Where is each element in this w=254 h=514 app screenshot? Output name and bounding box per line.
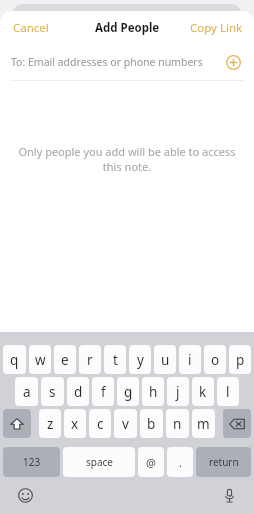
button[interactable]: i — [179, 345, 201, 374]
staticText: Add People — [95, 20, 160, 36]
staticText: z — [47, 415, 54, 433]
button[interactable]: c — [89, 409, 111, 438]
button[interactable]: k — [192, 377, 214, 406]
button[interactable]: r — [79, 345, 101, 374]
staticText: g — [124, 383, 133, 401]
staticText: o — [211, 351, 220, 369]
staticText: Cancel — [13, 20, 49, 36]
button[interactable]: f — [92, 377, 114, 406]
staticText: q — [10, 351, 19, 369]
button[interactable]: b — [140, 409, 163, 438]
staticText: u — [161, 351, 170, 369]
button[interactable]: @ — [138, 447, 164, 477]
button[interactable]: o — [204, 345, 226, 374]
button[interactable]: 123 — [3, 447, 60, 477]
staticText: j — [176, 383, 180, 401]
button[interactable]: return — [196, 447, 251, 477]
staticText: c — [97, 415, 104, 433]
staticText: x — [71, 415, 79, 433]
staticText: 123 — [23, 455, 41, 469]
staticText: p — [236, 351, 245, 369]
staticText: a — [23, 383, 31, 401]
staticText: k — [199, 383, 207, 401]
staticText: f — [101, 383, 106, 401]
button[interactable]: x — [64, 409, 86, 438]
button[interactable]: Dictation — [218, 484, 240, 506]
staticText: m — [197, 415, 210, 433]
button[interactable]: t — [104, 345, 126, 374]
button[interactable]: w — [29, 345, 51, 374]
staticText: t — [113, 351, 118, 369]
staticText: @ — [146, 455, 156, 470]
button[interactable]: Emoji — [14, 484, 36, 506]
button[interactable]: Shift — [3, 409, 31, 438]
button[interactable]: n — [166, 409, 189, 438]
button[interactable]: Add contact — [221, 50, 245, 74]
button[interactable]: j — [167, 377, 189, 406]
staticText: l — [226, 383, 230, 401]
staticText: space — [86, 455, 113, 469]
button[interactable]: h — [142, 377, 164, 406]
button[interactable]: v — [114, 409, 137, 438]
staticText: Only people you add will be able to acce… — [14, 144, 240, 174]
staticText: s — [49, 383, 56, 401]
staticText: return — [209, 455, 239, 469]
staticText: e — [61, 351, 69, 369]
button[interactable]: s — [41, 377, 64, 406]
button[interactable]: q — [3, 345, 26, 374]
staticText: i — [188, 351, 192, 369]
staticText: n — [173, 415, 182, 433]
button[interactable]: . — [167, 447, 193, 477]
button[interactable]: z — [39, 409, 61, 438]
button[interactable]: Backspace — [223, 409, 251, 438]
button[interactable]: m — [192, 409, 215, 438]
staticText: To: Email addresses or phone numbers — [11, 55, 203, 69]
button[interactable]: g — [117, 377, 139, 406]
button[interactable]: l — [217, 377, 239, 406]
button[interactable]: p — [229, 345, 251, 374]
staticText: b — [147, 415, 156, 433]
staticText: y — [137, 351, 144, 369]
button[interactable]: e — [54, 345, 76, 374]
staticText: r — [87, 351, 93, 369]
staticText: d — [74, 383, 83, 401]
staticText: h — [149, 383, 158, 401]
staticText: w — [35, 351, 46, 369]
staticText: Copy Link — [190, 20, 243, 36]
button[interactable]: d — [67, 377, 89, 406]
button[interactable]: u — [154, 345, 176, 374]
button[interactable]: space — [63, 447, 135, 477]
staticText: . — [179, 455, 182, 470]
button[interactable]: Copy Link — [179, 13, 254, 43]
staticText: v — [122, 415, 129, 433]
button[interactable]: a — [15, 377, 38, 406]
button[interactable]: Cancel — [0, 13, 62, 43]
button[interactable]: y — [129, 345, 151, 374]
